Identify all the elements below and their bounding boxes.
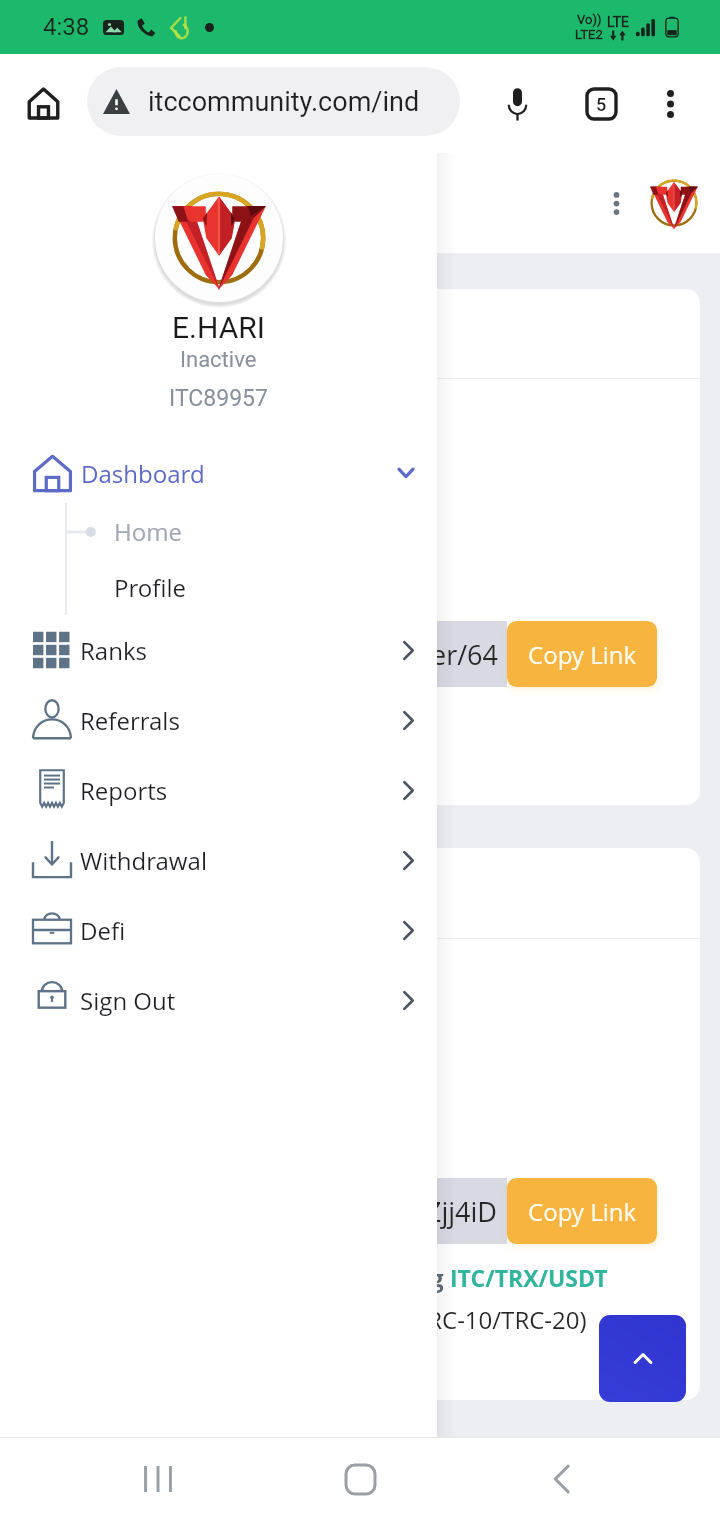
button[interactable]: Switch or close tabs — [565, 54, 637, 153]
button[interactable]: Ranks — [0, 615, 437, 685]
staticText: ITC89957 — [169, 385, 268, 412]
staticText: LTE2 — [575, 27, 603, 42]
button[interactable]: Home — [0, 54, 86, 153]
button[interactable]: Copy Link — [507, 621, 657, 687]
button[interactable]: Menu — [593, 180, 639, 226]
staticText: itccommunity.com/ind — [148, 86, 420, 118]
button[interactable]: itccommunity.com/ind — [87, 67, 460, 136]
staticText: Referrals — [80, 704, 180, 737]
button[interactable]: Back — [526, 1443, 598, 1515]
button[interactable]: Defi — [0, 895, 437, 965]
staticText: Inactive — [180, 347, 257, 373]
button[interactable]: Copy Link — [507, 1178, 657, 1244]
staticText: Your Referral Link for buying — [113, 1262, 450, 1293]
staticText: on Tron network (TRC-10/TRC-20) — [216, 1303, 587, 1336]
button[interactable]: More options — [634, 54, 706, 153]
staticText: Dashboard — [81, 457, 205, 490]
staticText: Ranks — [80, 634, 147, 667]
button[interactable]: Recent apps — [122, 1443, 194, 1515]
staticText: LTE — [607, 14, 629, 30]
button[interactable]: Withdrawal — [0, 825, 437, 895]
button[interactable]: Home — [324, 1443, 396, 1515]
staticText: Vo)) — [577, 12, 602, 27]
staticText: Withdrawal — [80, 844, 207, 877]
staticText: ITC/TRX/USDT — [450, 1262, 608, 1293]
staticText: 4:38 — [43, 13, 90, 41]
button[interactable]: Voice search — [473, 54, 561, 153]
button[interactable]: Home — [0, 503, 437, 560]
button[interactable]: Dashboard — [0, 443, 437, 503]
staticText: Reports — [80, 774, 168, 807]
staticText: 5 — [596, 94, 607, 115]
staticText: Sign Out — [80, 984, 176, 1017]
staticText: Defi — [80, 914, 126, 947]
button[interactable]: Profile — [0, 560, 437, 615]
staticText: Copy Link — [528, 638, 637, 671]
staticText: Profile — [114, 571, 186, 604]
staticText: Copy Link — [528, 1195, 637, 1228]
staticText: Zjj4iD — [426, 1193, 498, 1230]
button[interactable]: Reports — [0, 755, 437, 825]
button[interactable]: Referrals — [0, 685, 437, 755]
staticText: E.HARI — [172, 310, 265, 345]
button[interactable]: Scroll to top — [599, 1315, 686, 1402]
button[interactable]: Sign Out — [0, 965, 437, 1035]
staticText: Home — [114, 515, 182, 548]
staticText: er/64 — [431, 636, 498, 673]
